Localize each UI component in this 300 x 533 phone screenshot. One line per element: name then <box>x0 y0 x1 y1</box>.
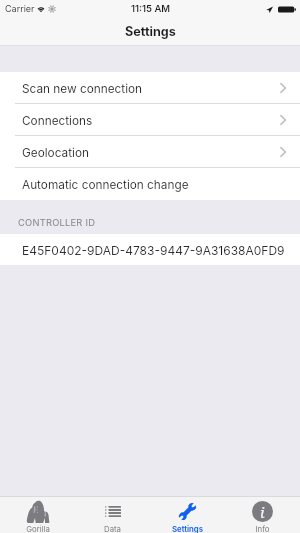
staticText: 11:15 AM <box>131 3 171 14</box>
button[interactable]: Connections <box>0 104 300 136</box>
staticText: Settings <box>125 24 176 39</box>
staticText: Connections <box>22 114 93 128</box>
staticText: Scan new connection <box>22 82 143 96</box>
button[interactable]: Geolocation <box>0 136 300 168</box>
staticText: E45F0402-9DAD-4783-9447-9A31638A0FD9 <box>22 243 285 258</box>
staticText: Data <box>104 524 121 533</box>
button[interactable]: Gorilla <box>0 497 75 533</box>
staticText: Settings <box>172 524 203 533</box>
button[interactable]: Automatic connection change <box>0 168 300 200</box>
staticText: CONTROLLER ID <box>18 217 96 228</box>
button[interactable]: i <box>225 497 300 533</box>
staticText: Info <box>255 524 270 533</box>
staticText: i <box>260 502 265 522</box>
staticText: Geolocation <box>22 146 89 160</box>
staticText: Gorilla <box>26 524 50 533</box>
button[interactable]: Scan new connection <box>0 72 300 104</box>
button[interactable]: Settings <box>150 497 225 533</box>
button[interactable]: E45F0402-9DAD-4783-9447-9A31638A0FD9 <box>0 234 300 265</box>
button[interactable]: Data <box>75 497 150 533</box>
staticText: Automatic connection change <box>22 178 189 192</box>
staticText: Carrier <box>5 3 35 14</box>
